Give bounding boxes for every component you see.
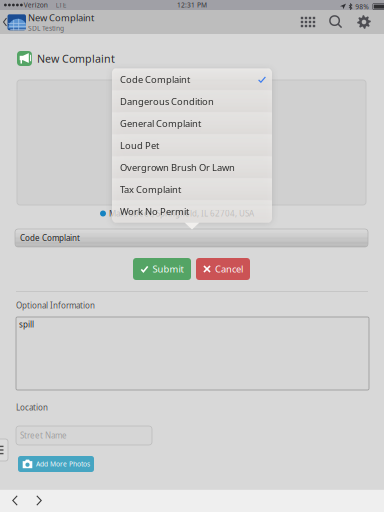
staticText: Code Complaint <box>20 233 80 243</box>
button[interactable]: Back <box>8 489 22 512</box>
button[interactable]: Forward <box>32 489 46 512</box>
staticText: Main Street, Springfield, IL 62704, USA <box>109 208 254 219</box>
button[interactable]: Add More Photos <box>18 456 94 472</box>
button[interactable]: Submit <box>133 258 191 280</box>
staticText: New Complaint <box>28 11 94 24</box>
button[interactable]: Apps <box>294 10 322 34</box>
staticText: spill <box>19 319 34 330</box>
button[interactable]: General Complaint <box>112 112 272 134</box>
button[interactable]: Loud Pet <box>112 134 272 156</box>
staticText: LTE <box>56 1 67 9</box>
button[interactable]: Code Complaint <box>112 68 272 90</box>
button[interactable]: Work No Permit <box>112 200 272 222</box>
button[interactable]: Code Complaint <box>15 229 368 247</box>
staticText: 12:31 PM <box>177 1 207 9</box>
staticText: Loud Pet <box>120 139 159 152</box>
staticText: Optional Information <box>16 300 95 311</box>
staticText: Dangerous Condition <box>120 95 214 108</box>
button[interactable]: Dangerous Condition <box>112 90 272 112</box>
button[interactable]: Back <box>0 10 10 34</box>
staticText: Cancel <box>215 263 243 275</box>
button[interactable]: Overgrown Brush Or Lawn <box>112 156 272 178</box>
staticText: Street Name <box>20 430 67 441</box>
staticText: 98% <box>355 2 369 11</box>
button[interactable]: Settings <box>350 10 378 34</box>
button[interactable]: Tax Complaint <box>112 178 272 200</box>
button[interactable]: Search <box>322 10 350 34</box>
staticText: Overgrown Brush Or Lawn <box>120 161 235 174</box>
button[interactable]: Cancel <box>196 258 250 280</box>
button[interactable]: Street Name <box>16 426 152 445</box>
staticText: New Complaint <box>37 51 115 66</box>
staticText: Submit <box>152 263 183 275</box>
staticText: SDL Testing <box>28 24 64 33</box>
staticText: Location <box>16 402 48 413</box>
staticText: Tax Complaint <box>120 183 181 196</box>
staticText: Work No Permit <box>120 205 189 218</box>
staticText: Verizon <box>24 1 48 9</box>
staticText: Add More Photos <box>36 460 90 468</box>
staticText: General Complaint <box>120 117 201 130</box>
staticText: Code Complaint <box>120 73 190 86</box>
